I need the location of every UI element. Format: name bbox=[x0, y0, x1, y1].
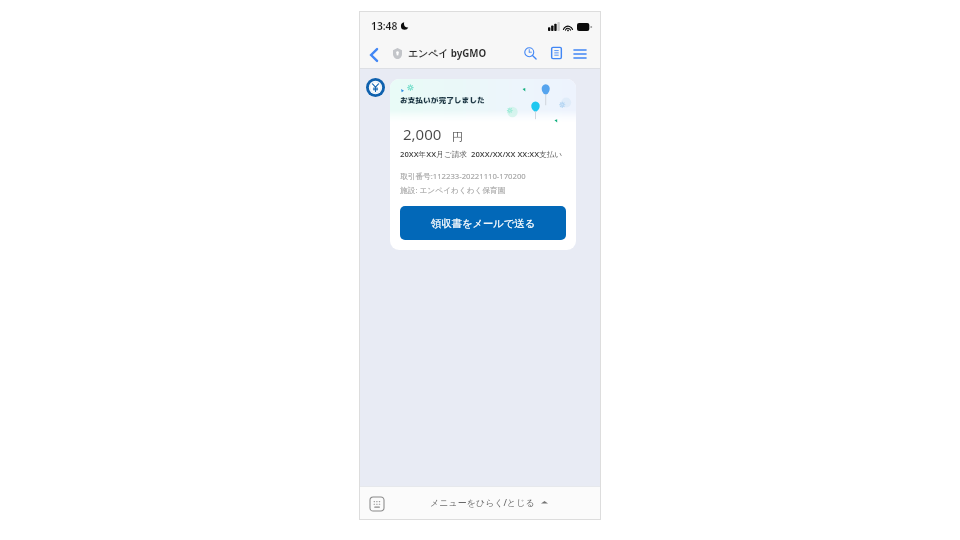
button[interactable]: Documents bbox=[546, 43, 566, 63]
staticText: 2,000 bbox=[403, 124, 442, 144]
button[interactable]: Menu bbox=[570, 43, 590, 63]
button[interactable]: Keyboard bbox=[370, 497, 384, 511]
staticText: 13:48 bbox=[371, 19, 398, 33]
staticText: エンペイ byGMO bbox=[408, 47, 487, 60]
staticText: お支払いが完了しました bbox=[400, 95, 485, 106]
button[interactable]: Search history bbox=[520, 43, 540, 63]
staticText: 領収書をメールで送る bbox=[431, 217, 536, 230]
staticText: 円 bbox=[452, 130, 463, 144]
button[interactable]: メニューをひらく/とじる bbox=[430, 496, 548, 508]
button[interactable]: Back bbox=[366, 45, 382, 65]
staticText: 取引番号:112233-20221110-170200 bbox=[400, 171, 526, 182]
staticText: 20XX年XX月ご請求 20XX/XX/XX XX:XX支払い bbox=[400, 149, 563, 160]
staticText: メニューをひらく/とじる bbox=[430, 496, 535, 508]
button[interactable]: 領収書をメールで送る bbox=[400, 206, 566, 240]
staticText: 施設: エンペイわくわく保育園 bbox=[400, 185, 506, 196]
